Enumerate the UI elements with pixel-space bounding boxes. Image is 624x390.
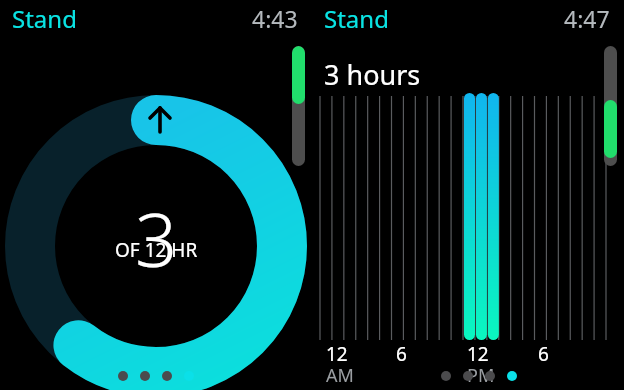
staticText: OF 12 HR [115,237,198,263]
staticText: 3 [135,188,178,289]
button[interactable]: Stand [8,0,81,36]
staticText: 4:43 [252,3,298,34]
staticText: AM [326,363,354,388]
staticText: 4:47 [564,3,610,34]
staticText: 12 [326,341,348,367]
staticText: 6 [538,341,549,367]
staticText: 12 [467,341,489,367]
staticText: 6 [396,341,407,367]
staticText: Stand [12,2,77,34]
staticText: PM [467,363,495,388]
staticText: Stand [324,2,389,34]
button[interactable] [0,0,312,390]
button[interactable]: 3 hours [320,52,425,97]
button[interactable]: Stand [320,0,393,36]
staticText: 3 hours [324,56,421,93]
